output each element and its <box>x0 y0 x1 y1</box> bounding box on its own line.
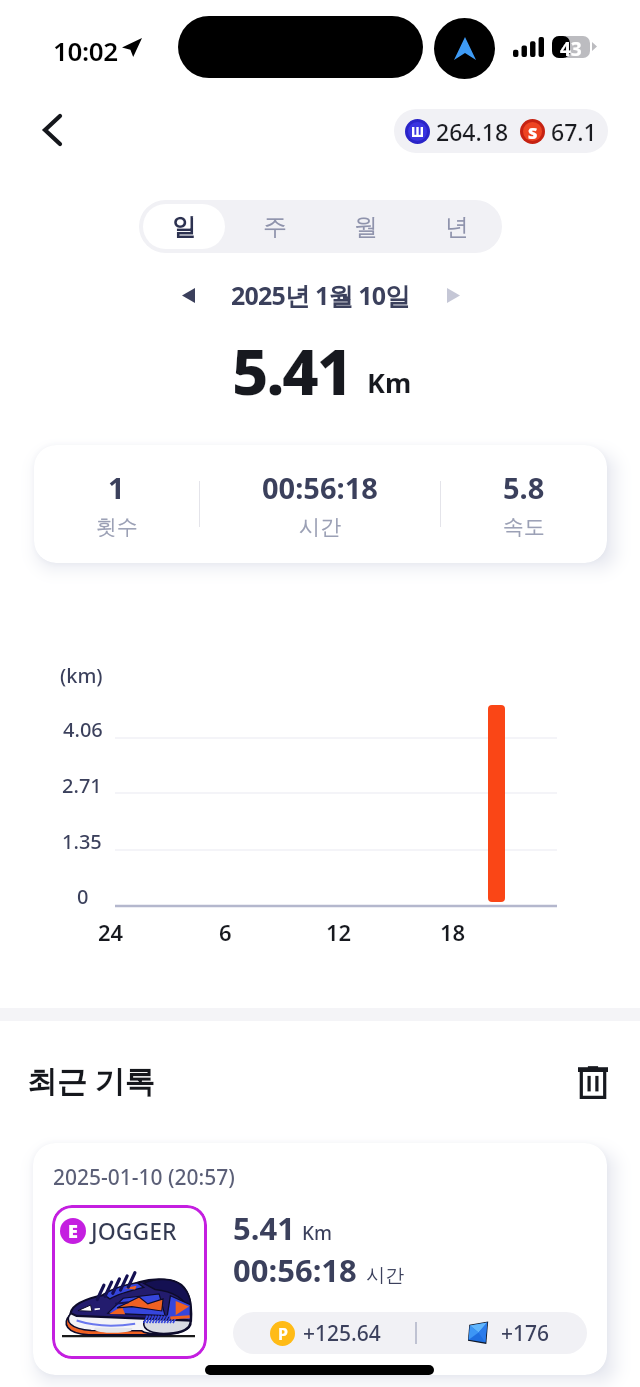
staticText: 24 <box>98 917 124 947</box>
staticText: 횟수 <box>96 514 138 540</box>
button[interactable]: 264.18 <box>394 109 608 153</box>
button[interactable]: 년 <box>411 204 502 249</box>
button[interactable]: Delete records <box>570 1058 616 1104</box>
staticText: E <box>68 1219 78 1244</box>
staticText: JOGGER <box>91 1215 177 1246</box>
staticText: 속도 <box>503 514 545 540</box>
button[interactable]: Next day <box>432 274 474 316</box>
staticText: P <box>278 1323 288 1345</box>
staticText: 주 <box>263 212 287 242</box>
staticText: 264.18 <box>436 116 509 147</box>
staticText: 일 <box>172 212 196 242</box>
button[interactable]: Back <box>26 104 78 156</box>
staticText: Km <box>367 364 412 401</box>
button[interactable]: 2025-01-10 (20:57) <box>33 1143 607 1375</box>
button[interactable]: Previous day <box>167 274 209 316</box>
staticText: 12 <box>326 917 352 947</box>
staticText: 5.41 <box>233 1207 295 1249</box>
staticText: 2025년 1월 10일 <box>231 278 410 312</box>
staticText: 1 <box>108 468 125 507</box>
staticText: 10:02 <box>53 33 118 68</box>
staticText: +125.64 <box>303 1319 381 1348</box>
staticText: 2.71 <box>62 772 102 799</box>
staticText: 18 <box>440 917 466 947</box>
staticText: Km <box>302 1220 333 1246</box>
button[interactable]: P <box>233 1312 587 1354</box>
staticText: 67.1 <box>551 116 597 147</box>
staticText: 00:56:18 <box>262 468 378 507</box>
staticText: 시간 <box>299 514 341 540</box>
staticText: 시간 <box>366 1264 404 1288</box>
staticText: 0 <box>77 883 89 910</box>
staticText: 년 <box>445 212 469 242</box>
staticText: 1.35 <box>62 828 102 855</box>
staticText: S <box>528 122 538 141</box>
button[interactable]: 일 <box>143 204 225 249</box>
staticText: 6 <box>219 917 232 947</box>
staticText: 5.8 <box>503 468 545 507</box>
staticText: 00:56:18 <box>233 1249 357 1291</box>
staticText: (km) <box>60 662 103 689</box>
button[interactable]: 월 <box>320 204 411 249</box>
staticText: 월 <box>354 212 378 242</box>
staticText: 최근 기록 <box>27 1060 155 1101</box>
button[interactable]: 주 <box>229 204 320 249</box>
staticText: 5.41 <box>232 328 352 396</box>
staticText: 2025-01-10 (20:57) <box>53 1163 235 1192</box>
staticText: 43 <box>560 36 582 58</box>
staticText: 4.06 <box>63 716 103 743</box>
staticText: +176 <box>501 1319 550 1348</box>
